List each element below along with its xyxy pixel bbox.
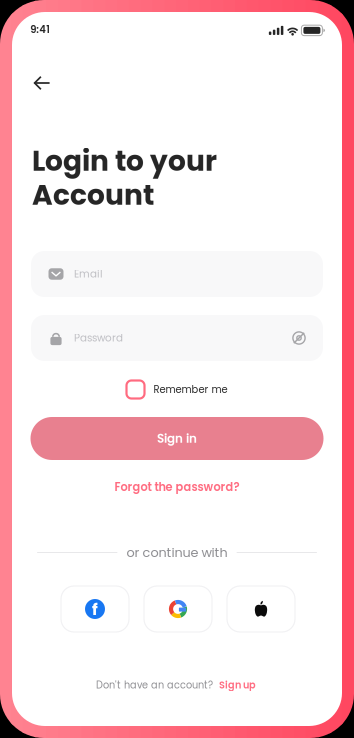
staticText: Sign in bbox=[157, 430, 197, 447]
staticText: Email bbox=[74, 267, 103, 281]
staticText: Forgot the password? bbox=[114, 479, 239, 495]
button[interactable]: Sign in bbox=[30, 417, 323, 460]
staticText: 9:41 bbox=[30, 22, 50, 36]
staticText: or continue with bbox=[126, 543, 227, 561]
button[interactable]: Password bbox=[31, 315, 323, 361]
staticText: Account bbox=[32, 175, 154, 215]
button[interactable]: Continue with Google bbox=[144, 586, 212, 632]
button[interactable]: Forgot the password? bbox=[114, 477, 239, 497]
button[interactable]: Remember me bbox=[126, 378, 227, 400]
staticText: Login to your bbox=[32, 141, 217, 181]
staticText: f bbox=[92, 598, 98, 621]
staticText: Don't have an account? bbox=[96, 678, 213, 692]
button[interactable]: Continue with Apple bbox=[227, 586, 295, 632]
button[interactable]: Back bbox=[23, 64, 61, 102]
staticText: Remember me bbox=[153, 383, 227, 396]
button[interactable]: Email bbox=[31, 251, 323, 297]
button[interactable]: Continue with Facebook bbox=[61, 586, 129, 632]
button[interactable]: Don't have an account? bbox=[96, 675, 256, 695]
staticText: Password bbox=[74, 331, 123, 345]
staticText: Sign up bbox=[219, 678, 256, 692]
